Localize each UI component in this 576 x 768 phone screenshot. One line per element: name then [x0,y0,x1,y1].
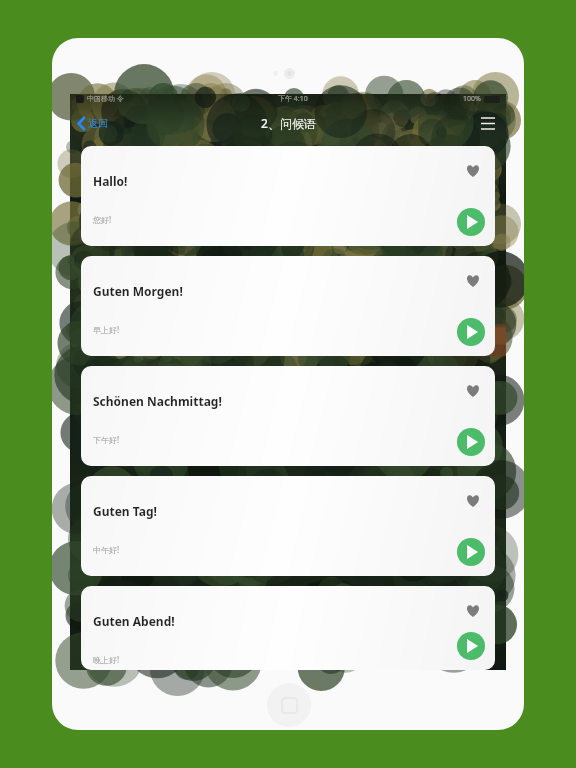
staticText: 中国移动 令 [87,94,124,104]
button[interactable]: Play audio [457,428,485,456]
staticText: 您好! [93,214,112,225]
button[interactable]: Favorite [463,600,483,620]
button[interactable]: Home [267,683,311,727]
button[interactable]: Favorite [463,270,483,290]
staticText: 返回 [88,117,108,130]
staticText: Hallo! [93,173,128,189]
button[interactable]: Play audio [457,208,485,236]
button[interactable]: Favorite [463,490,483,510]
button[interactable]: Guten Tag! [81,476,495,576]
button[interactable]: Play audio [457,538,485,566]
staticText: 2、问候语 [261,115,316,131]
button[interactable]: Favorite [463,380,483,400]
button[interactable]: Guten Abend! [81,586,495,670]
button[interactable]: Favorite [463,160,483,180]
button[interactable]: Back [76,114,110,133]
staticText: Guten Abend! [93,613,175,629]
staticText: Guten Morgen! [93,283,183,299]
staticText: 100% [463,94,481,104]
staticText: 中午好! [93,544,120,555]
staticText: Schönen Nachmittag! [93,393,222,409]
staticText: 晚上好! [93,654,120,665]
button[interactable]: Play audio [457,632,485,660]
staticText: 早上好! [93,324,120,335]
button[interactable]: Schönen Nachmittag! [81,366,495,466]
button[interactable]: Menu [478,113,498,133]
button[interactable]: Play audio [457,318,485,346]
staticText: 下午好! [93,434,120,445]
staticText: 下午 4:10 [278,94,308,104]
button[interactable]: Hallo! [81,146,495,246]
staticText: Guten Tag! [93,503,157,519]
button[interactable]: Guten Morgen! [81,256,495,356]
